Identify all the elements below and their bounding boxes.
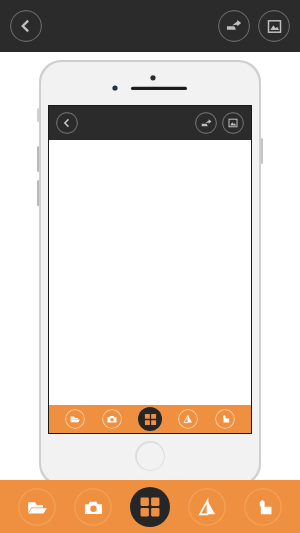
button[interactable]: Touch: [244, 488, 282, 526]
button[interactable]: Flip: [178, 409, 198, 429]
button[interactable]: Touch: [215, 409, 235, 429]
button[interactable]: Back: [10, 10, 42, 42]
button[interactable]: Apps: [130, 487, 170, 527]
button[interactable]: Camera: [102, 409, 122, 429]
button[interactable]: Open: [65, 409, 85, 429]
button[interactable]: Back: [56, 112, 78, 134]
button[interactable]: Camera: [74, 488, 112, 526]
button[interactable]: Gallery: [258, 10, 290, 42]
button[interactable]: Flip: [188, 488, 226, 526]
button[interactable]: Share: [195, 112, 217, 134]
button[interactable]: Open: [18, 488, 56, 526]
button[interactable]: Apps: [138, 407, 162, 431]
button[interactable]: Home: [135, 441, 165, 471]
button[interactable]: Gallery: [222, 112, 244, 134]
button[interactable]: Share: [218, 10, 250, 42]
